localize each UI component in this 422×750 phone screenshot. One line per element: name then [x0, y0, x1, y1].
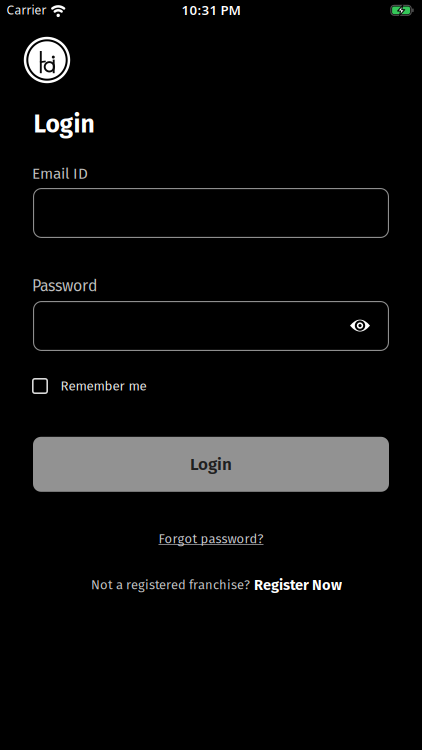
staticText: Forgot password? [158, 531, 263, 547]
button[interactable]: Not a registered franchise? [91, 576, 342, 594]
staticText: Email ID [32, 164, 88, 183]
button[interactable]: Show password [343, 309, 377, 343]
staticText: Carrier [7, 2, 47, 18]
staticText: Remember me [60, 378, 146, 394]
staticText: 10:31 PM [181, 1, 240, 19]
button[interactable]: Password [33, 301, 389, 351]
staticText: Not a registered franchise? [91, 577, 250, 593]
staticText: Password [32, 276, 97, 295]
button[interactable]: Remember me [32, 374, 202, 398]
button[interactable]: Forgot password? [158, 531, 263, 547]
button[interactable]: Email ID [33, 188, 389, 238]
staticText: Register Now [254, 576, 342, 594]
staticText: Login [33, 109, 94, 139]
button[interactable]: Login [33, 437, 389, 492]
staticText: Login [190, 454, 232, 475]
